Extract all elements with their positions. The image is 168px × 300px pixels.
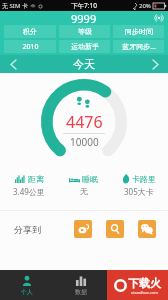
staticText: 数据: [75, 288, 87, 296]
staticText: 3.49公里: [13, 186, 45, 197]
staticText: 今天: [73, 57, 95, 71]
staticText: xiazaihuo.com: [131, 290, 159, 295]
button[interactable]: 睡眠: [56, 171, 111, 199]
button[interactable]: 前一天: [0, 55, 26, 73]
staticText: 10000: [70, 135, 99, 149]
button[interactable]: QQ空间: [106, 220, 124, 238]
button[interactable]: 运动新手: [59, 40, 110, 53]
staticText: 下午7:10: [71, 1, 97, 10]
staticText: 卡路里: [132, 174, 156, 184]
button[interactable]: 后一天: [142, 55, 168, 73]
button[interactable]: 2010: [4, 40, 56, 53]
staticText: 20%: [139, 2, 151, 10]
button[interactable]: 蓝牙同步...: [113, 40, 164, 53]
button[interactable]: 个人: [0, 270, 54, 300]
staticText: 蓝牙同步...: [122, 42, 156, 52]
staticText: 个人: [21, 288, 33, 296]
staticText: 距离: [28, 174, 44, 184]
button[interactable]: 积分: [4, 25, 56, 38]
staticText: 分享到: [14, 224, 41, 235]
staticText: 305大卡: [124, 186, 154, 197]
staticText: 无: [80, 186, 88, 196]
staticText: 下载火: [128, 276, 161, 290]
staticText: 等级: [78, 27, 92, 36]
staticText: 无 SIM 卡: [2, 2, 28, 10]
staticText: 2010: [22, 42, 39, 52]
staticText: 4476: [66, 111, 103, 133]
button[interactable]: 等级: [59, 25, 110, 38]
staticText: 积分: [23, 27, 37, 36]
button[interactable]: 距离: [2, 171, 56, 200]
staticText: 9999: [71, 11, 97, 25]
staticText: 睡眠: [82, 174, 98, 184]
button[interactable]: 微博: [74, 220, 92, 238]
staticText: 同步时间: [125, 27, 153, 36]
button[interactable]: 数据: [54, 270, 107, 300]
staticText: 运动新手: [71, 42, 99, 51]
button[interactable]: 微信: [138, 220, 156, 238]
button[interactable]: 卡路里: [111, 171, 166, 200]
button[interactable]: 连接: [153, 12, 165, 24]
button[interactable]: 同步时间: [113, 25, 164, 38]
